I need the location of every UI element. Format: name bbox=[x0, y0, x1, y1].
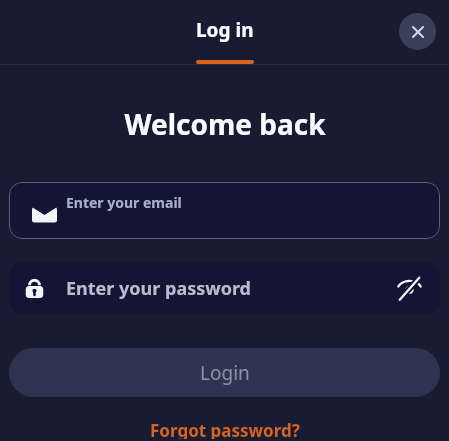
staticText: Login bbox=[200, 360, 250, 386]
staticText: Enter your email bbox=[66, 193, 182, 212]
staticText: Forgot password? bbox=[150, 419, 300, 439]
button[interactable]: Show password bbox=[390, 269, 428, 307]
button[interactable]: Enter your password bbox=[9, 262, 440, 314]
button[interactable]: Forgot password? bbox=[142, 417, 308, 441]
staticText: Log in bbox=[196, 17, 254, 43]
staticText: Welcome back bbox=[124, 105, 326, 143]
button[interactable]: Login bbox=[9, 348, 440, 397]
button[interactable]: Close bbox=[399, 13, 436, 50]
button[interactable]: Enter your email bbox=[9, 182, 440, 239]
staticText: Enter your password bbox=[66, 276, 251, 301]
